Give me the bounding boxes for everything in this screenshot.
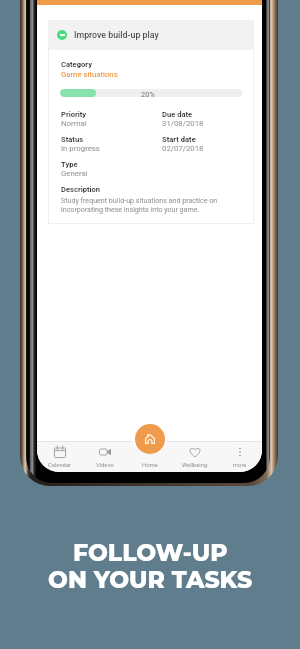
button[interactable]: Improve build-up play bbox=[48, 20, 254, 50]
staticText: Wellbeing bbox=[182, 462, 208, 469]
staticText: more bbox=[233, 462, 247, 469]
other: More bbox=[234, 446, 246, 458]
staticText: Start date bbox=[162, 135, 196, 144]
staticText: FOLLOW-UP bbox=[73, 538, 228, 567]
button[interactable]: Wellbeing bbox=[172, 441, 217, 472]
staticText: Game situations bbox=[61, 70, 118, 79]
other: Videos bbox=[99, 446, 111, 458]
staticText: ON YOUR TASKS bbox=[48, 565, 253, 594]
staticText: Priority bbox=[61, 110, 87, 119]
staticText: Calendar bbox=[48, 462, 71, 469]
button[interactable]: Calendar bbox=[37, 441, 82, 472]
staticText: Description bbox=[61, 185, 101, 194]
staticText: Videos bbox=[96, 462, 114, 469]
staticText: In progress bbox=[61, 144, 100, 153]
staticText: Improve build-up play bbox=[74, 30, 159, 40]
button[interactable]: Home bbox=[135, 424, 165, 454]
staticText: Due date bbox=[162, 110, 193, 119]
staticText: 20% bbox=[141, 90, 155, 97]
staticText: Status bbox=[61, 135, 84, 144]
staticText: Home bbox=[142, 462, 158, 469]
staticText: Study frequent build-up situations and p… bbox=[61, 196, 218, 214]
staticText: Normal bbox=[61, 119, 87, 128]
staticText: 02/07/2018 bbox=[162, 144, 204, 153]
staticText: 31/08/2018 bbox=[162, 119, 204, 128]
button[interactable]: More bbox=[217, 441, 262, 472]
button[interactable]: Videos bbox=[82, 441, 127, 472]
staticText: General bbox=[61, 169, 88, 178]
other: Wellbeing bbox=[189, 446, 201, 458]
staticText: Category bbox=[61, 60, 92, 69]
button[interactable]: Home bbox=[127, 441, 172, 472]
staticText: Type bbox=[61, 160, 78, 169]
other: Calendar bbox=[54, 446, 66, 458]
